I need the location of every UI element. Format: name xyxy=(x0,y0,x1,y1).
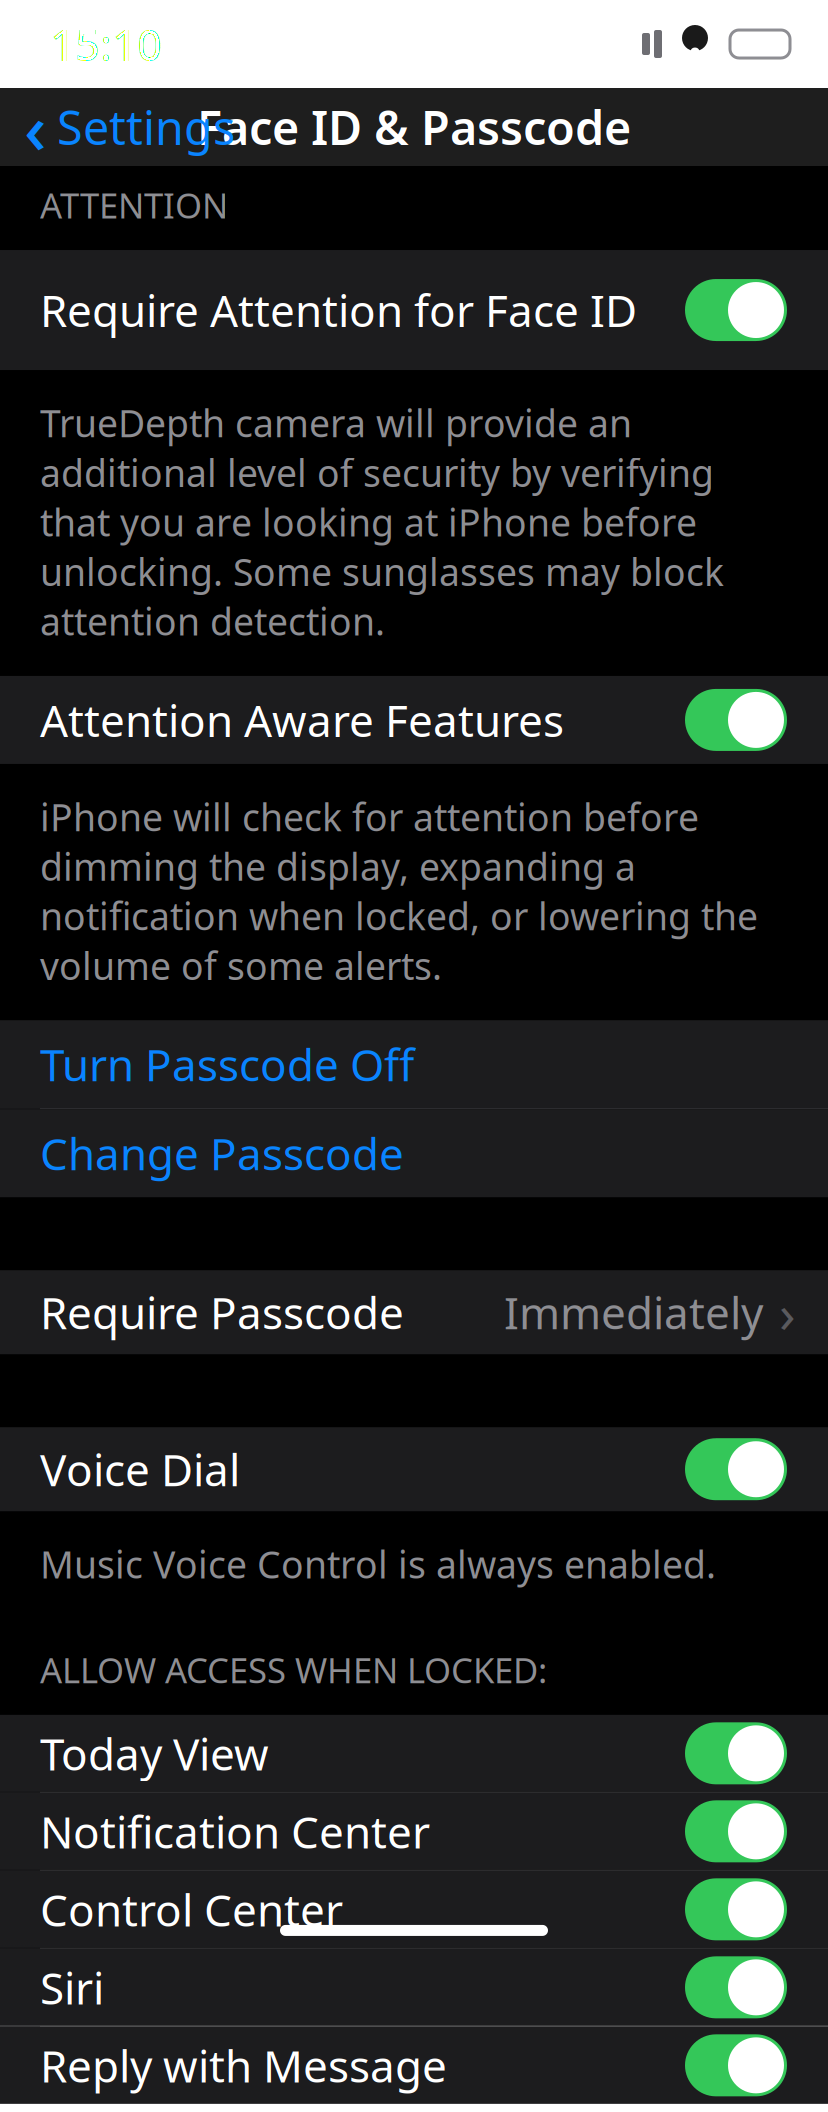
button[interactable]: Reply with Message xyxy=(0,2027,828,2104)
button[interactable]: Require Passcode xyxy=(0,1270,828,1354)
button[interactable]: Attention Aware Features xyxy=(0,676,828,764)
staticText: ATTENTION xyxy=(40,182,228,228)
staticText: Attention Aware Features xyxy=(40,691,564,749)
staticText: › xyxy=(779,1277,796,1348)
staticText: Today View xyxy=(40,1724,269,1782)
staticText: Music Voice Control is always enabled. xyxy=(40,1539,716,1589)
staticText: Reply with Message xyxy=(40,2036,447,2094)
button[interactable]: Require Attention for Face ID xyxy=(0,250,828,370)
staticText: TrueDepth camera will provide an additio… xyxy=(40,398,724,646)
staticText: Control Center xyxy=(40,1880,343,1938)
staticText: Siri xyxy=(40,1958,104,2016)
button[interactable]: Notification Center xyxy=(0,1793,828,1870)
button[interactable]: Today View xyxy=(0,1715,828,1792)
button[interactable]: ‹ xyxy=(0,88,249,166)
button[interactable]: Control Center xyxy=(0,1871,828,1948)
button[interactable]: Voice Dial xyxy=(0,1427,828,1511)
staticText: Voice Dial xyxy=(40,1440,240,1498)
staticText: Require Attention for Face ID xyxy=(40,281,637,339)
staticText: Notification Center xyxy=(40,1802,430,1860)
button[interactable]: Turn Passcode Off xyxy=(0,1020,828,1108)
staticText: Immediately xyxy=(504,1283,763,1341)
staticText: iPhone will check for attention before d… xyxy=(40,792,758,990)
staticText: Turn Passcode Off xyxy=(40,1035,414,1093)
staticText: 15:10 xyxy=(50,15,162,73)
staticText: Change Passcode xyxy=(40,1124,404,1182)
button[interactable]: Siri xyxy=(0,1949,828,2026)
staticText: Settings xyxy=(57,96,235,158)
staticText: ‹ xyxy=(24,81,47,173)
staticText: ALLOW ACCESS WHEN LOCKED: xyxy=(40,1647,547,1693)
staticText: Require Passcode xyxy=(40,1283,404,1341)
button[interactable]: Change Passcode xyxy=(0,1109,828,1197)
staticText: Face ID & Passcode xyxy=(197,96,631,158)
